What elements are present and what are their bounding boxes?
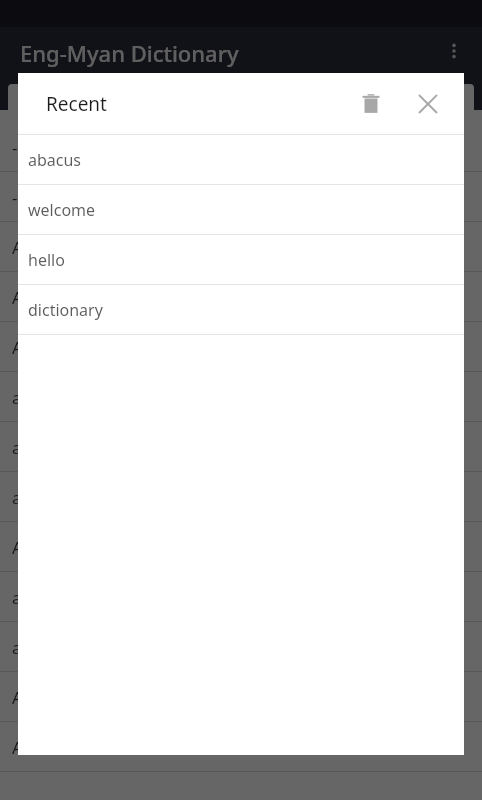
- staticText: A-OK: [12, 536, 53, 559]
- staticText: welcome: [28, 199, 96, 221]
- button[interactable]: A-line: [0, 322, 482, 372]
- button[interactable]: More options: [432, 29, 476, 73]
- staticText: -ist: [12, 186, 37, 209]
- staticText: a propos: [12, 636, 83, 659]
- button[interactable]: a posteriori: [0, 472, 482, 522]
- button[interactable]: abacus: [18, 135, 464, 185]
- button[interactable]: A-bomb: [0, 222, 482, 272]
- staticText: A-road: [12, 736, 66, 759]
- button[interactable]: [8, 84, 474, 120]
- button[interactable]: Clear recent searches: [347, 80, 395, 128]
- staticText: Eng-Myan Dictionary: [20, 38, 239, 68]
- button[interactable]: welcome: [18, 185, 464, 235]
- staticText: a fortiori: [12, 436, 82, 459]
- button[interactable]: -ish: [0, 122, 482, 172]
- staticText: -ish: [12, 136, 41, 159]
- staticText: A-side: [12, 686, 61, 709]
- button[interactable]: Close: [404, 80, 452, 128]
- button[interactable]: A-level: [0, 272, 482, 322]
- button[interactable]: a priori: [0, 572, 482, 622]
- staticText: a priori: [12, 586, 70, 609]
- staticText: a posteriori: [12, 486, 104, 509]
- button[interactable]: a fortiori: [0, 422, 482, 472]
- button[interactable]: dictionary: [18, 285, 464, 335]
- button[interactable]: -ist: [0, 172, 482, 222]
- staticText: A-bomb: [12, 236, 76, 259]
- staticText: Recent: [46, 91, 107, 117]
- staticText: A-level: [12, 286, 65, 309]
- button[interactable]: A-side: [0, 672, 482, 722]
- staticText: dictionary: [28, 299, 103, 321]
- button[interactable]: hello: [18, 235, 464, 285]
- button[interactable]: A-OK: [0, 522, 482, 572]
- staticText: abacus: [28, 149, 82, 171]
- button[interactable]: A-road: [0, 722, 482, 772]
- button[interactable]: a propos: [0, 622, 482, 672]
- staticText: a cappella: [12, 386, 93, 409]
- staticText: hello: [28, 249, 65, 271]
- button[interactable]: a cappella: [0, 372, 482, 422]
- staticText: A-line: [12, 336, 58, 359]
